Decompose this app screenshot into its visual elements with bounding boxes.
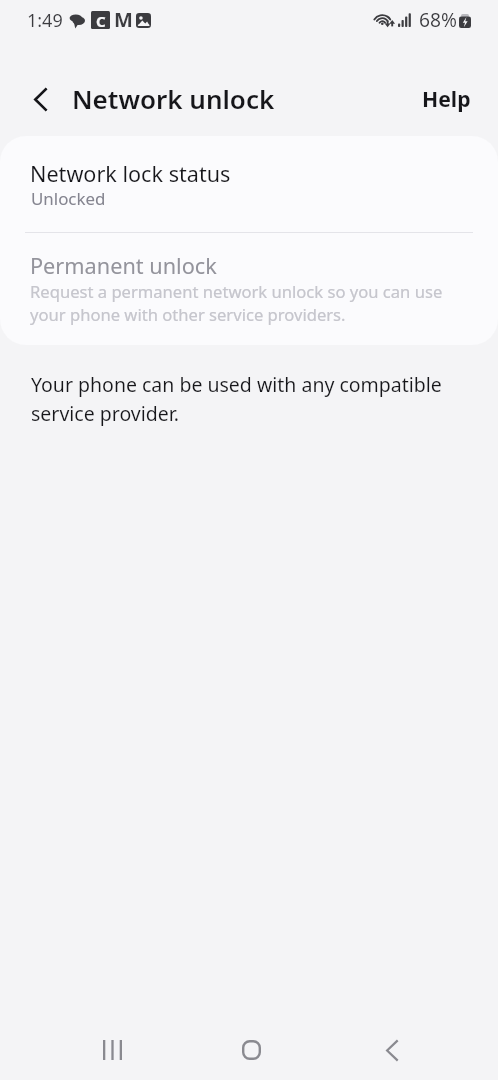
staticText: Request a permanent network unlock so yo… [30,280,446,326]
button[interactable]: Help [410,76,474,123]
staticText: Help [422,84,471,113]
staticText: 68% [419,6,457,32]
button[interactable]: Network lock status [0,136,498,232]
button[interactable]: Back [17,76,64,123]
button[interactable]: Recents [82,1020,143,1080]
staticText: Network unlock [72,81,275,116]
button[interactable]: Permanent unlock [0,232,498,345]
button[interactable]: Home [221,1020,282,1080]
staticText: C [96,11,106,29]
staticText: Unlocked [31,187,106,210]
staticText: M [114,6,133,33]
staticText: 1:49 [27,8,63,33]
staticText: Permanent unlock [30,251,217,281]
staticText: Network lock status [30,159,231,188]
staticText: Your phone can be used with any compatib… [31,370,451,428]
button[interactable]: Back [361,1020,422,1080]
